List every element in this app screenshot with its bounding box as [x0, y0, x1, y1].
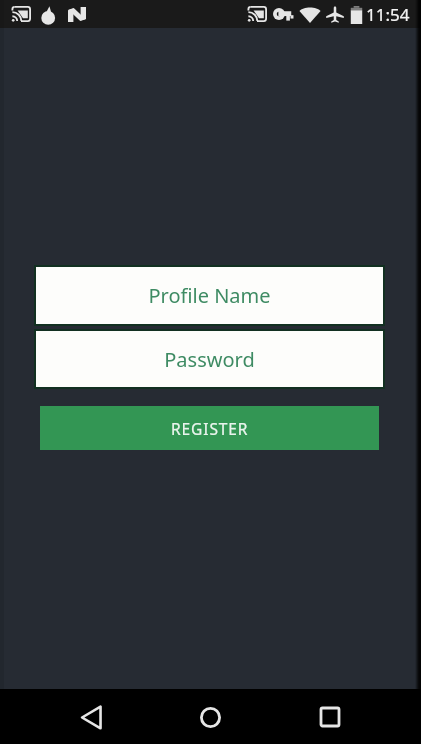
- button[interactable]: Back: [69, 695, 113, 739]
- button[interactable]: Home: [188, 695, 232, 739]
- staticText: REGISTER: [171, 418, 249, 439]
- staticText: 11:54: [366, 3, 410, 26]
- button[interactable]: Password: [36, 331, 383, 387]
- button[interactable]: Profile Name: [36, 267, 383, 324]
- staticText: Password: [164, 346, 255, 373]
- staticText: Profile Name: [148, 282, 271, 309]
- button[interactable]: Recent apps: [308, 695, 352, 739]
- button[interactable]: REGISTER: [40, 406, 379, 450]
